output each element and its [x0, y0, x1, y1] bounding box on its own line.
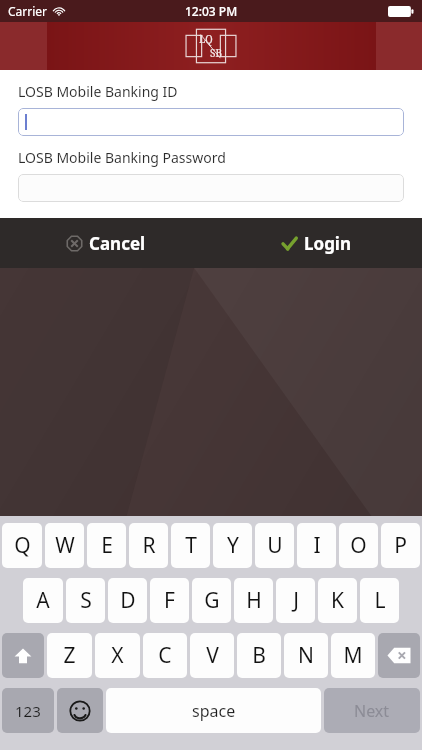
- button[interactable]: Next: [324, 688, 420, 733]
- staticText: Next: [354, 700, 390, 722]
- button[interactable]: H: [234, 578, 273, 623]
- staticText: K: [331, 586, 344, 615]
- staticText: LOSB Mobile Banking ID: [18, 82, 178, 101]
- button[interactable]: Backspace: [378, 633, 420, 678]
- staticText: B: [252, 641, 266, 670]
- staticText: G: [204, 586, 220, 615]
- staticText: W: [55, 531, 75, 560]
- button[interactable]: I: [297, 523, 336, 568]
- button[interactable]: [18, 108, 404, 136]
- button[interactable]: [18, 174, 404, 202]
- button[interactable]: Emoji: [57, 688, 103, 733]
- staticText: F: [164, 586, 175, 615]
- button[interactable]: E: [87, 523, 126, 568]
- staticText: S: [80, 586, 92, 615]
- button[interactable]: A: [23, 578, 63, 623]
- button[interactable]: G: [192, 578, 231, 623]
- button[interactable]: Login: [211, 218, 422, 268]
- staticText: P: [394, 531, 407, 560]
- staticText: T: [185, 531, 197, 560]
- button[interactable]: D: [108, 578, 147, 623]
- button[interactable]: T: [171, 523, 210, 568]
- button[interactable]: J: [276, 578, 315, 623]
- button[interactable]: Cancel: [0, 218, 211, 268]
- staticText: X: [111, 641, 124, 670]
- staticText: H: [246, 586, 262, 615]
- button[interactable]: L: [360, 578, 399, 623]
- button[interactable]: 123: [2, 688, 54, 733]
- button[interactable]: Shift: [2, 633, 44, 678]
- button[interactable]: C: [143, 633, 187, 678]
- button[interactable]: U: [255, 523, 294, 568]
- button[interactable]: Z: [47, 633, 92, 678]
- button[interactable]: S: [66, 578, 105, 623]
- button[interactable]: Y: [213, 523, 252, 568]
- staticText: Carrier: [8, 3, 48, 19]
- button[interactable]: B: [237, 633, 281, 678]
- staticText: N: [298, 641, 314, 670]
- staticText: L: [374, 586, 386, 615]
- staticText: V: [206, 641, 219, 670]
- button[interactable]: P: [381, 523, 420, 568]
- staticText: 123: [15, 701, 41, 721]
- button[interactable]: space: [106, 688, 321, 733]
- staticText: Q: [14, 531, 31, 560]
- staticText: U: [267, 531, 283, 560]
- staticText: I: [313, 531, 321, 560]
- button[interactable]: Q: [2, 523, 42, 568]
- button[interactable]: V: [190, 633, 234, 678]
- staticText: D: [120, 586, 136, 615]
- staticText: SB: [210, 46, 222, 60]
- button[interactable]: K: [318, 578, 357, 623]
- staticText: space: [192, 700, 236, 722]
- button[interactable]: M: [331, 633, 375, 678]
- staticText: Z: [63, 641, 76, 670]
- button[interactable]: F: [150, 578, 189, 623]
- staticText: J: [293, 586, 299, 615]
- button[interactable]: O: [339, 523, 378, 568]
- button[interactable]: N: [284, 633, 328, 678]
- staticText: A: [36, 586, 50, 615]
- staticText: R: [142, 531, 156, 560]
- staticText: C: [158, 641, 172, 670]
- staticText: LQ: [199, 32, 213, 46]
- staticText: O: [350, 531, 367, 560]
- button[interactable]: X: [95, 633, 140, 678]
- staticText: LOSB Mobile Banking Password: [18, 148, 226, 167]
- staticText: Login: [304, 232, 352, 255]
- staticText: M: [343, 641, 363, 670]
- button[interactable]: W: [45, 523, 84, 568]
- button[interactable]: R: [129, 523, 168, 568]
- staticText: 12:03 PM: [185, 3, 238, 19]
- staticText: E: [101, 531, 113, 560]
- staticText: Cancel: [89, 232, 146, 255]
- staticText: Y: [227, 531, 239, 560]
